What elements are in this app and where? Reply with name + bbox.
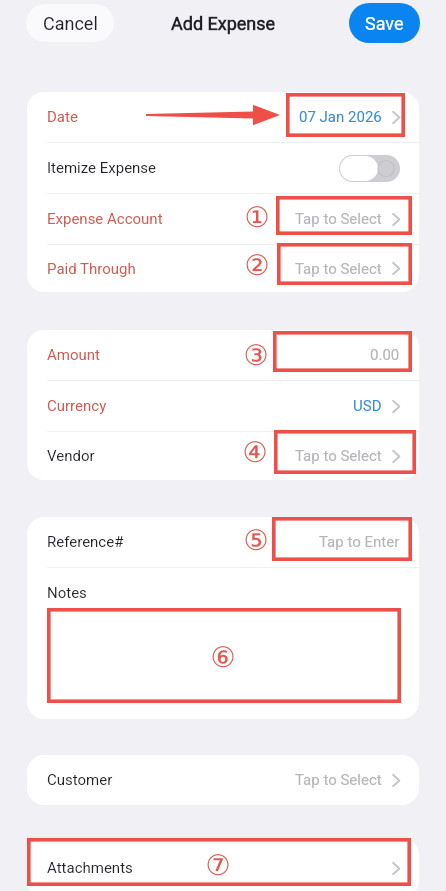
staticText: Save	[365, 13, 404, 34]
button[interactable]: Customer	[27, 755, 419, 805]
staticText: ①	[244, 201, 270, 234]
button[interactable]: Amount	[27, 330, 419, 380]
button[interactable]: Attachments	[27, 843, 419, 891]
staticText: Date	[47, 108, 78, 126]
button[interactable]: Notes	[27, 568, 419, 618]
button[interactable]: Date	[27, 92, 419, 142]
staticText: 07 Jan 2026	[299, 108, 382, 126]
staticText: Tap to Enter	[319, 533, 400, 551]
staticText: Expense Account	[47, 210, 163, 228]
staticText: ②	[244, 249, 270, 282]
staticText: Add Expense	[171, 13, 276, 34]
staticText: Tap to Select	[295, 260, 382, 278]
staticText: Tap to Select	[295, 210, 382, 228]
staticText: Cancel	[43, 13, 98, 34]
staticText: ⑦	[205, 849, 231, 882]
staticText: ④	[242, 436, 268, 469]
staticText: Itemize Expense	[47, 159, 157, 177]
staticText: Currency	[47, 397, 107, 415]
button[interactable]: Cancel	[26, 4, 114, 42]
staticText: ⑥	[210, 641, 236, 674]
button[interactable]: Currency	[27, 381, 419, 431]
button[interactable]: Save	[349, 3, 420, 43]
staticText: Reference#	[47, 533, 124, 551]
staticText: ③	[243, 339, 269, 372]
button[interactable]: Itemize Expense	[27, 143, 419, 193]
staticText: 0.00	[370, 346, 400, 364]
staticText: Vendor	[47, 447, 95, 465]
button[interactable]: Vendor	[27, 432, 419, 480]
staticText: Customer	[47, 771, 113, 789]
staticText: Tap to Select	[295, 771, 382, 789]
staticText: USD	[353, 397, 382, 415]
staticText: Paid Through	[47, 260, 136, 278]
button[interactable]: Paid Through	[27, 245, 419, 292]
button[interactable]: Itemize Expense toggle	[339, 155, 400, 182]
staticText: Amount	[47, 346, 100, 364]
staticText: ⑤	[243, 524, 269, 557]
staticText: Attachments	[47, 859, 133, 877]
staticText: Notes	[47, 584, 87, 602]
staticText: Tap to Select	[295, 447, 382, 465]
button[interactable]: Reference#	[27, 517, 419, 567]
button[interactable]: Expense Account	[27, 194, 419, 244]
